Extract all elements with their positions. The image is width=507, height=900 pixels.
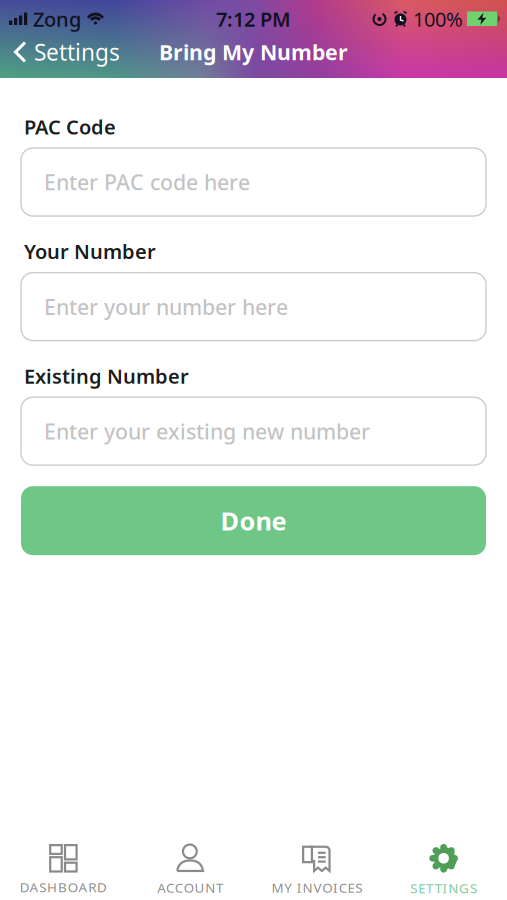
button[interactable]: SETTINGS: [380, 845, 507, 897]
staticText: Enter PAC code here: [44, 168, 250, 196]
staticText: Zong: [33, 6, 81, 32]
button[interactable]: Done: [21, 486, 486, 555]
staticText: Done: [220, 504, 286, 537]
staticText: Your Number: [24, 238, 156, 265]
staticText: 100%: [413, 6, 463, 32]
staticText: DASHBOARD: [20, 878, 107, 896]
staticText: SETTINGS: [410, 879, 477, 897]
staticText: ACCOUNT: [157, 879, 223, 896]
button[interactable]: Existing Number: [21, 397, 486, 465]
button[interactable]: ACCOUNT: [127, 846, 254, 896]
staticText: Existing Number: [24, 363, 189, 389]
button[interactable]: Back: [0, 37, 120, 67]
staticText: PAC Code: [24, 113, 116, 140]
button[interactable]: MY INVOICES: [253, 846, 380, 896]
staticText: Bring My Number: [159, 38, 348, 66]
staticText: MY INVOICES: [271, 879, 362, 896]
staticText: Enter your existing new number: [44, 417, 370, 445]
button[interactable]: DASHBOARD: [0, 846, 127, 896]
staticText: Settings: [34, 37, 120, 67]
staticText: 7:12 PM: [216, 6, 291, 32]
button[interactable]: Your Number: [21, 273, 486, 341]
staticText: Enter your number here: [44, 292, 288, 321]
button[interactable]: PAC Code: [21, 148, 486, 216]
